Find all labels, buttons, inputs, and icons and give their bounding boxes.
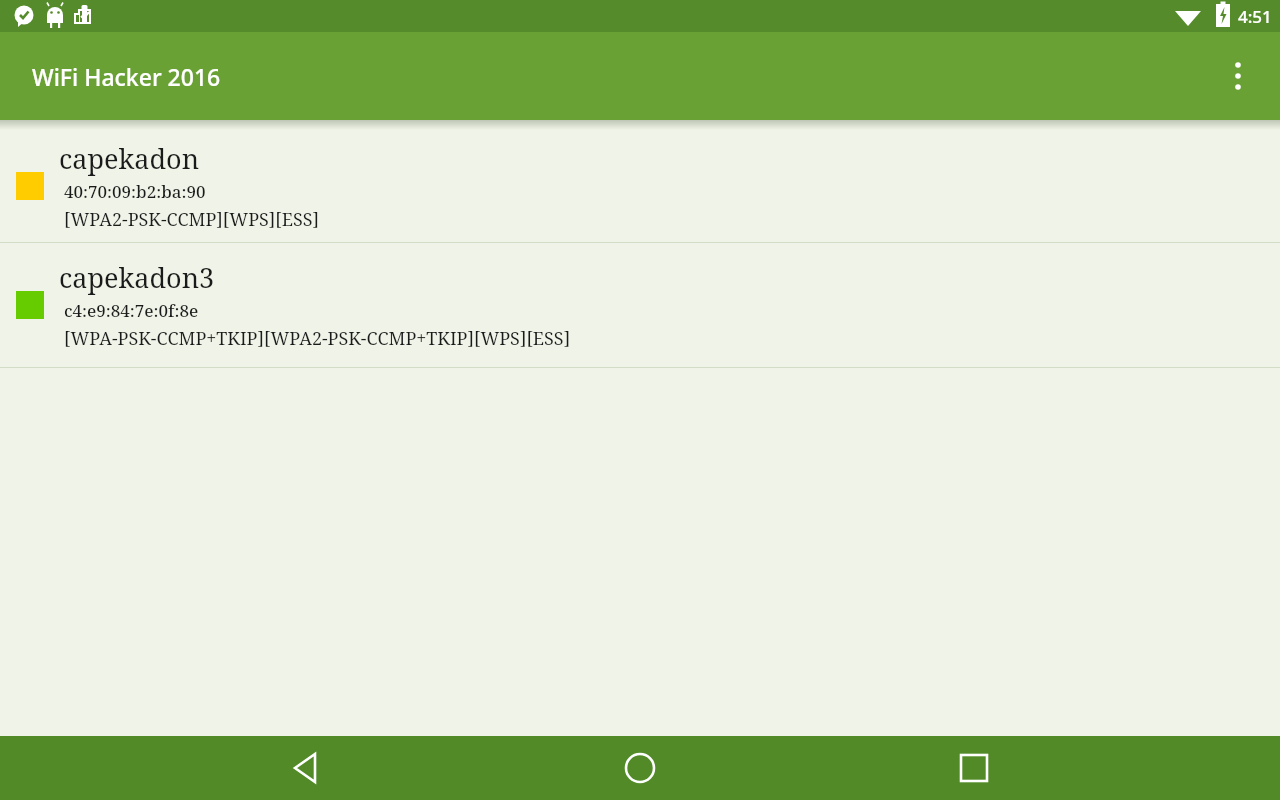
staticText: [WPA-PSK-CCMP+TKIP][WPA2-PSK-CCMP+TKIP][… xyxy=(64,326,571,351)
staticText: 4:51 xyxy=(1238,5,1272,28)
button[interactable]: Back xyxy=(278,740,334,796)
button[interactable]: capekadon3 xyxy=(0,243,1280,367)
button[interactable]: Home xyxy=(612,740,668,796)
staticText: WiFi Hacker 2016 xyxy=(32,61,221,92)
staticText: [WPA2-PSK-CCMP][WPS][ESS] xyxy=(64,207,320,232)
staticText: capekadon xyxy=(59,140,200,177)
button[interactable]: Recent apps xyxy=(946,740,1002,796)
staticText: capekadon3 xyxy=(59,259,215,296)
staticText: 40:70:09:b2:ba:90 xyxy=(64,180,206,203)
staticText: c4:e9:84:7e:0f:8e xyxy=(64,299,199,322)
button[interactable]: capekadon xyxy=(0,130,1280,242)
button[interactable]: More options xyxy=(1214,52,1262,100)
